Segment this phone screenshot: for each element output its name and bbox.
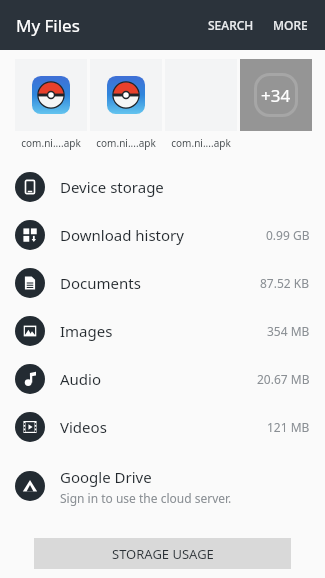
button[interactable]: com.ni....apk [90, 59, 162, 150]
staticText: 121 MB [267, 419, 310, 435]
button[interactable]: Documents [0, 259, 325, 307]
staticText: 0.99 GB [266, 227, 310, 243]
staticText: STORAGE USAGE [112, 545, 214, 563]
button[interactable]: 34 more files [240, 59, 312, 131]
button[interactable]: Download history [0, 211, 325, 259]
button[interactable]: STORAGE USAGE [34, 538, 291, 569]
staticText: +34 [261, 84, 291, 107]
staticText: Images [60, 321, 113, 341]
staticText: 87.52 KB [260, 275, 310, 291]
button[interactable]: SEARCH [201, 9, 261, 41]
button[interactable]: MORE [266, 9, 315, 41]
staticText: com.ni....apk [171, 136, 231, 150]
staticText: Documents [60, 273, 141, 293]
button[interactable]: Audio [0, 355, 325, 403]
staticText: com.ni....apk [21, 136, 81, 150]
button[interactable]: Images [0, 307, 325, 355]
staticText: Download history [60, 225, 184, 245]
staticText: 20.67 MB [257, 371, 310, 387]
staticText: Google Drive [60, 467, 152, 487]
button[interactable]: com.ni....apk [165, 59, 237, 150]
staticText: Videos [60, 417, 107, 437]
button[interactable]: com.ni....apk [15, 59, 87, 150]
staticText: Sign in to use the cloud server. [60, 490, 232, 506]
staticText: Audio [60, 369, 102, 389]
staticText: Device storage [60, 177, 164, 197]
staticText: com.ni....apk [96, 136, 156, 150]
staticText: 354 MB [267, 323, 310, 339]
staticText: SEARCH [208, 17, 254, 33]
button[interactable]: Google Drive [0, 459, 325, 513]
button[interactable]: Device storage [0, 163, 325, 211]
button[interactable]: Videos [0, 403, 325, 451]
staticText: My Files [16, 14, 80, 37]
staticText: MORE [273, 17, 308, 33]
